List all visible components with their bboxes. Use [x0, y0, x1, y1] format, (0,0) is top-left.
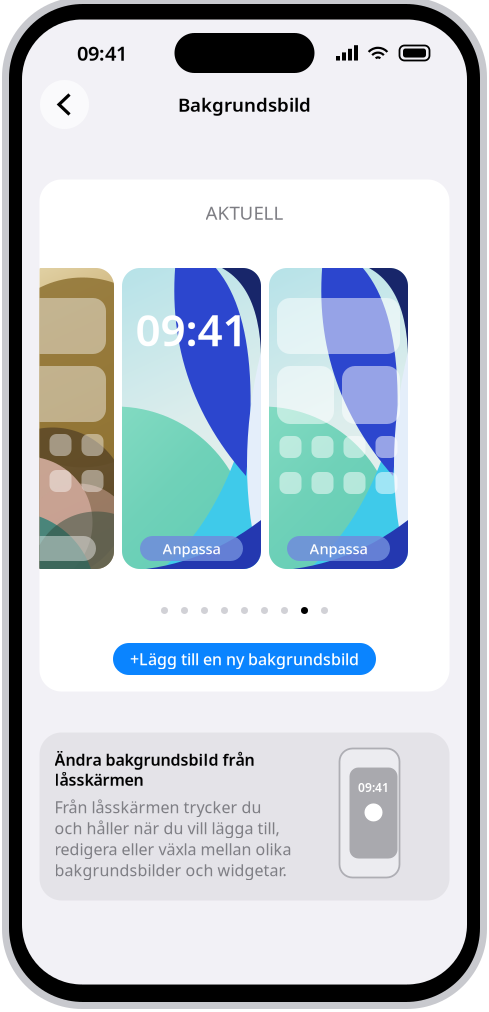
staticText: Anpassa — [309, 539, 367, 558]
staticText: låsskärmen — [54, 769, 143, 790]
button[interactable]: +Lägg till en ny bakgrundsbild — [113, 643, 376, 675]
staticText: och håller när du vill lägga till, — [54, 817, 279, 839]
staticText: 09:41 — [77, 40, 127, 66]
staticText: AKTUELL — [205, 200, 283, 225]
staticText: bakgrundsbilder och widgetar. — [54, 859, 286, 881]
staticText: Anpassa — [162, 539, 220, 558]
staticText: Från låsskärmen trycker du — [54, 796, 261, 818]
staticText: +Lägg till en ny bakgrundsbild — [130, 648, 359, 670]
button[interactable]: Anpassa — [140, 536, 243, 561]
staticText: redigera eller växla mellan olika — [54, 838, 291, 860]
staticText: Bakgrundsbild — [178, 92, 311, 117]
staticText: 09:41 — [135, 300, 247, 358]
button[interactable]: Back — [40, 80, 89, 129]
staticText: Ändra bakgrundsbild från — [54, 749, 254, 770]
button[interactable]: Anpassa — [287, 536, 390, 561]
staticText: 09:41 — [358, 779, 389, 795]
